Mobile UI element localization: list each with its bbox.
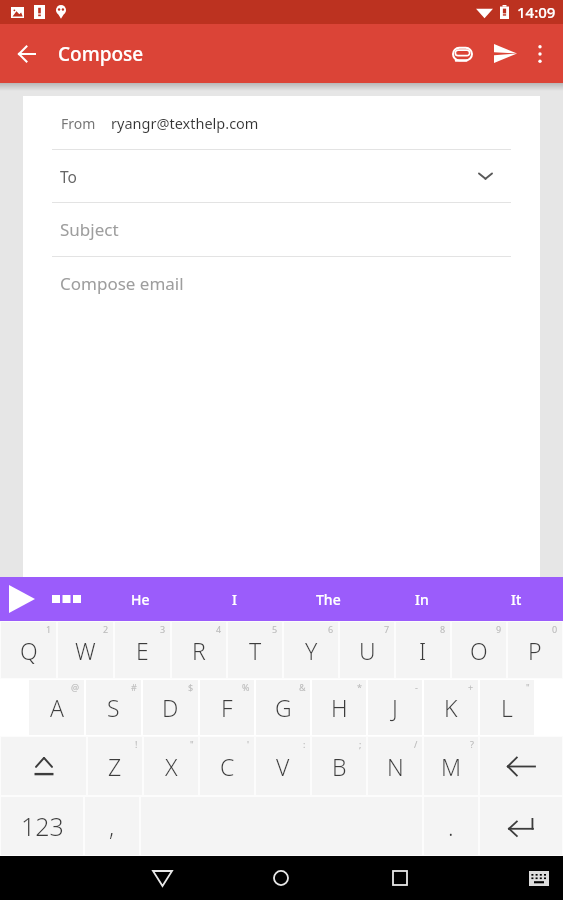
button[interactable]: S bbox=[86, 680, 141, 735]
button[interactable]: Recent apps bbox=[378, 856, 422, 900]
staticText: N bbox=[387, 751, 404, 782]
staticText: It bbox=[511, 590, 522, 609]
button[interactable]: He bbox=[94, 577, 187, 621]
staticText: V bbox=[276, 751, 290, 782]
button[interactable]: F bbox=[200, 680, 254, 735]
button[interactable]: Z bbox=[88, 737, 142, 795]
button[interactable]: U bbox=[340, 622, 394, 678]
button[interactable]: W bbox=[58, 622, 113, 678]
button[interactable]: Back bbox=[140, 856, 184, 900]
button[interactable]: , bbox=[85, 797, 139, 855]
button[interactable]: M bbox=[424, 737, 478, 795]
button[interactable]: Q bbox=[1, 622, 56, 678]
staticText: G bbox=[275, 692, 292, 723]
staticText: : bbox=[303, 738, 306, 750]
staticText: M bbox=[441, 751, 462, 782]
button[interactable]: 123 bbox=[1, 797, 83, 855]
button[interactable]: H bbox=[312, 680, 366, 735]
button[interactable]: A bbox=[29, 680, 84, 735]
staticText: / bbox=[414, 738, 418, 750]
staticText: 7 bbox=[384, 623, 390, 635]
staticText: , bbox=[109, 811, 115, 842]
button[interactable]: Home bbox=[259, 856, 303, 900]
staticText: T bbox=[249, 635, 262, 666]
staticText: O bbox=[470, 635, 488, 666]
staticText: U bbox=[359, 635, 376, 666]
button[interactable]: Send bbox=[483, 31, 528, 76]
staticText: ! bbox=[135, 738, 138, 750]
button[interactable]: V bbox=[256, 737, 310, 795]
button[interactable]: B bbox=[312, 737, 366, 795]
button[interactable]: Enter bbox=[480, 797, 562, 855]
button[interactable]: G bbox=[256, 680, 310, 735]
button[interactable]: More options bbox=[519, 33, 561, 75]
staticText: To bbox=[60, 166, 77, 187]
staticText: H bbox=[331, 692, 348, 723]
staticText: 6 bbox=[328, 623, 334, 635]
button[interactable]: In bbox=[375, 577, 469, 621]
staticText: Q bbox=[20, 635, 38, 666]
button[interactable]: D bbox=[143, 680, 198, 735]
button[interactable]: Y bbox=[284, 622, 338, 678]
staticText: Compose email bbox=[60, 272, 184, 295]
staticText: The bbox=[316, 590, 341, 609]
button[interactable]: From bbox=[23, 96, 540, 149]
button[interactable]: Compose email bbox=[23, 257, 540, 577]
button[interactable]: . bbox=[424, 797, 478, 855]
button[interactable]: I bbox=[396, 622, 450, 678]
button[interactable]: X bbox=[144, 737, 198, 795]
staticText: # bbox=[131, 681, 137, 693]
staticText: . bbox=[448, 811, 454, 842]
staticText: ? bbox=[470, 738, 474, 750]
button[interactable]: Change keyboard bbox=[517, 856, 561, 900]
staticText: I bbox=[232, 590, 237, 609]
button[interactable]: O bbox=[452, 622, 506, 678]
staticText: 0 bbox=[552, 623, 558, 635]
button[interactable]: The bbox=[281, 577, 375, 621]
button[interactable]: Play bbox=[0, 577, 43, 621]
staticText: A bbox=[50, 692, 64, 723]
staticText: R bbox=[192, 635, 206, 666]
staticText: * bbox=[357, 681, 362, 693]
button[interactable]: Subject bbox=[23, 203, 540, 256]
staticText: 5 bbox=[272, 623, 278, 635]
button[interactable]: R bbox=[172, 622, 226, 678]
button[interactable]: L bbox=[480, 680, 534, 735]
staticText: L bbox=[501, 692, 513, 723]
button[interactable]: More options bbox=[44, 577, 89, 621]
button[interactable]: Shift bbox=[1, 737, 86, 795]
staticText: ; bbox=[359, 738, 362, 750]
staticText: C bbox=[220, 751, 235, 782]
staticText: K bbox=[444, 692, 458, 723]
staticText: 1 bbox=[46, 623, 52, 635]
staticText: B bbox=[332, 751, 347, 782]
staticText: & bbox=[299, 681, 306, 693]
staticText: - bbox=[415, 681, 418, 693]
staticText: 3 bbox=[160, 623, 166, 635]
button[interactable]: T bbox=[228, 622, 282, 678]
staticText: 4 bbox=[216, 623, 222, 635]
button[interactable]: C bbox=[200, 737, 254, 795]
staticText: P bbox=[528, 635, 542, 666]
button[interactable]: J bbox=[368, 680, 422, 735]
button[interactable]: Back bbox=[0, 27, 53, 81]
staticText: ' bbox=[247, 738, 250, 750]
button[interactable]: Expand recipients bbox=[472, 163, 498, 189]
button[interactable]: Attach file bbox=[440, 32, 484, 76]
button[interactable]: E bbox=[115, 622, 170, 678]
staticText: 14:09 bbox=[517, 2, 556, 22]
staticText: He bbox=[131, 590, 150, 609]
button[interactable]: N bbox=[368, 737, 422, 795]
button[interactable]: It bbox=[469, 577, 563, 621]
staticText: " bbox=[190, 738, 194, 750]
staticText: I bbox=[419, 635, 427, 666]
staticText: W bbox=[75, 635, 96, 666]
button[interactable]: To bbox=[23, 150, 540, 202]
button[interactable]: P bbox=[508, 622, 562, 678]
staticText: ryangr@texthelp.com bbox=[111, 113, 259, 133]
button[interactable]: K bbox=[424, 680, 478, 735]
button[interactable]: Backspace bbox=[480, 737, 562, 795]
button[interactable]: I bbox=[187, 577, 281, 621]
staticText: Z bbox=[108, 751, 122, 782]
